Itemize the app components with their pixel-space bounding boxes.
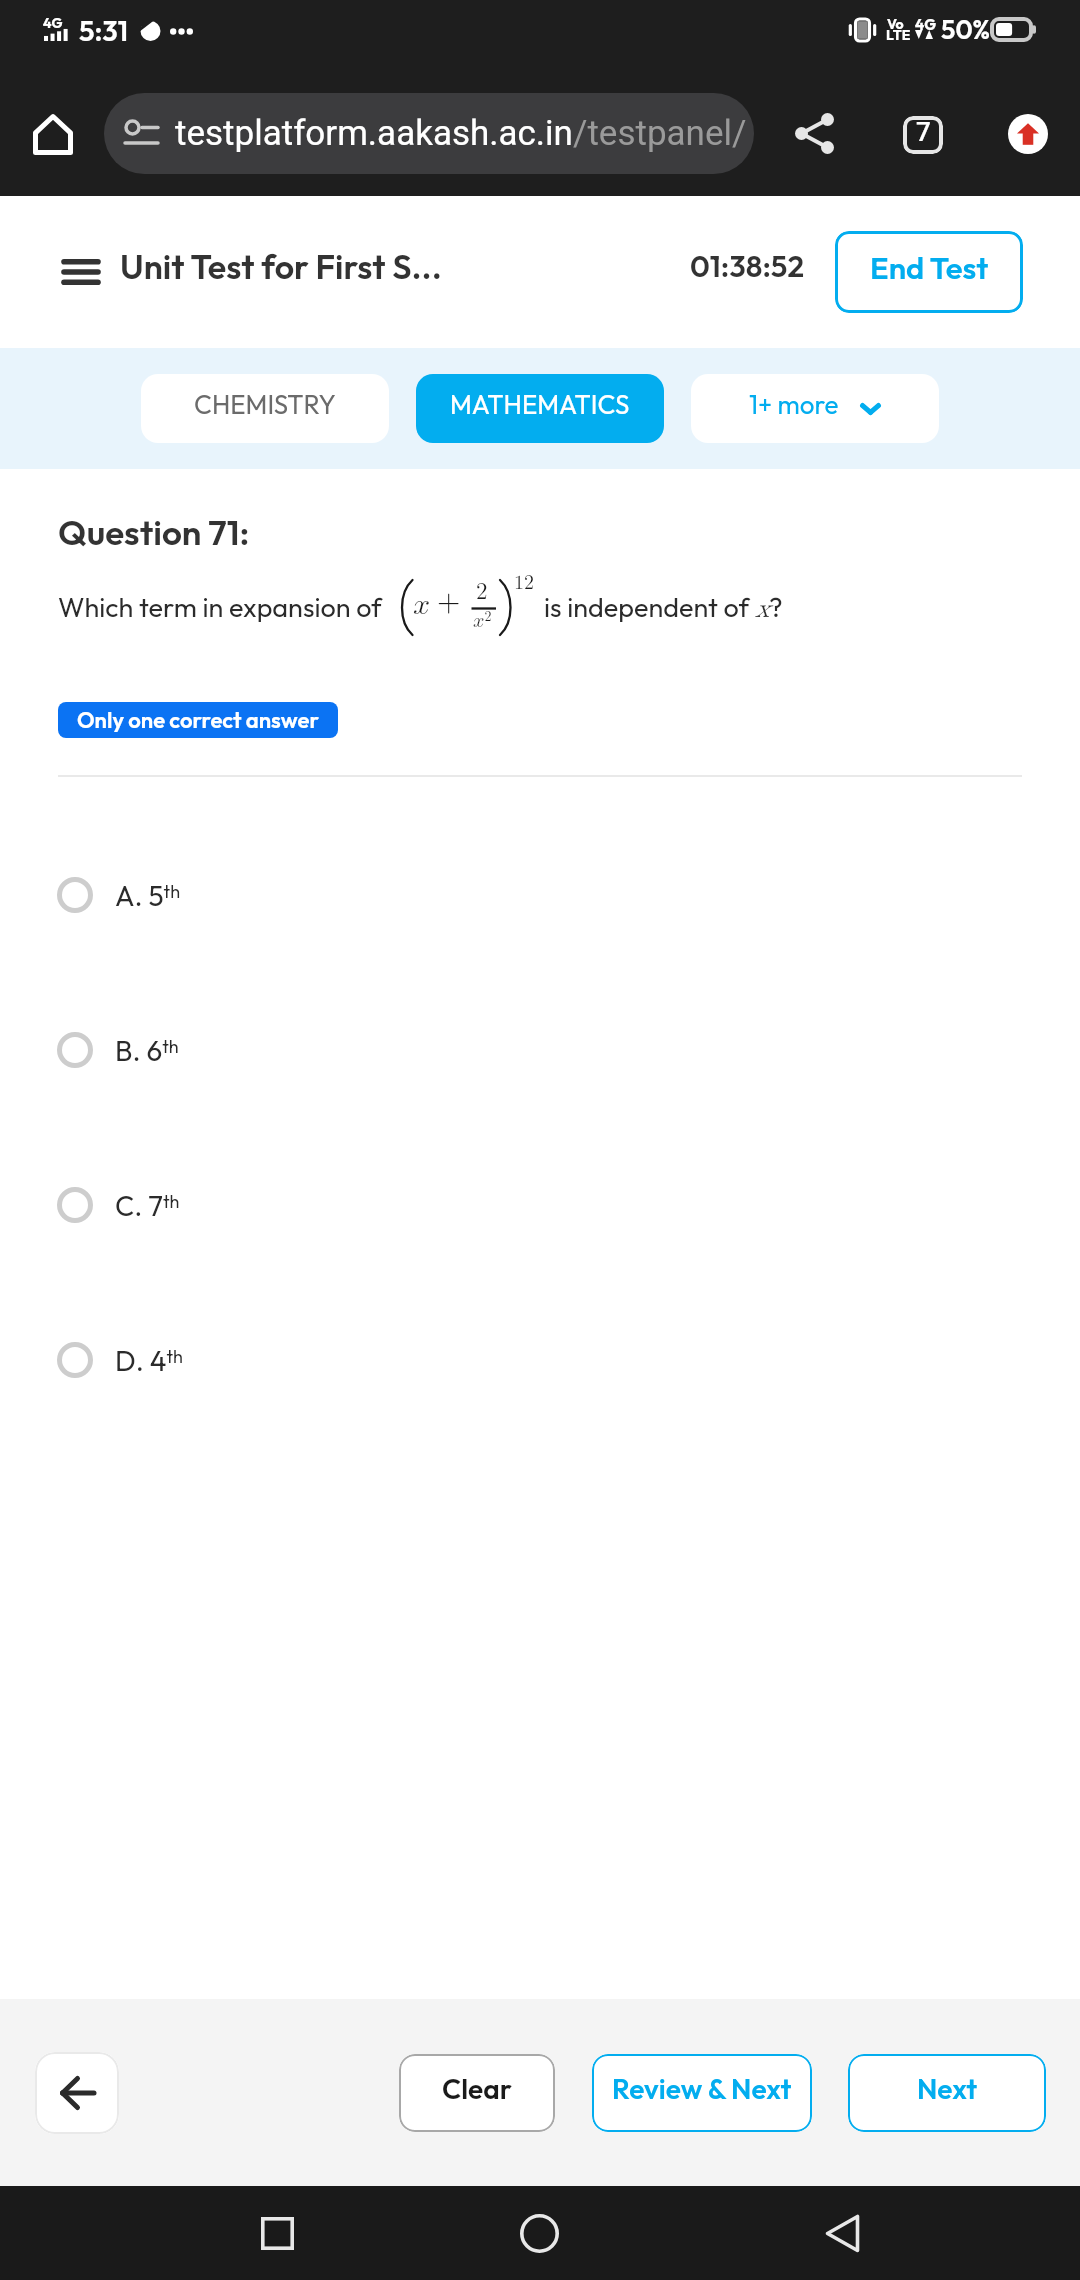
staticText: 1+ more — [749, 388, 839, 421]
staticText: 𝑥2 — [473, 610, 492, 631]
button[interactable]: 1+ more — [691, 374, 939, 443]
staticText: Clear — [442, 2071, 512, 2106]
staticText: is independent of x? — [544, 590, 783, 624]
staticText: Unit Test for First S... — [120, 245, 442, 288]
button[interactable]: Recent apps — [237, 2193, 317, 2273]
staticText: LTE — [886, 26, 911, 44]
staticText: End Test — [870, 248, 989, 287]
button[interactable]: Tabs — [903, 116, 943, 154]
staticText: 50% — [941, 13, 990, 46]
staticText: Next — [917, 2071, 978, 2106]
staticText: D. 4th — [115, 1343, 183, 1378]
button[interactable]: Update available — [1008, 114, 1048, 154]
staticText: C. 7th — [115, 1188, 180, 1223]
button[interactable]: Menu — [64, 259, 98, 285]
staticText: CHEMISTRY — [194, 388, 336, 421]
staticText: Which term in expansion of — [58, 590, 382, 624]
staticText: 4G — [915, 15, 936, 34]
button[interactable]: D. 4th — [0, 1342, 1080, 1378]
staticText: MATHEMATICS — [450, 388, 630, 421]
button[interactable]: Back — [802, 2193, 882, 2273]
button[interactable]: C. 7th — [0, 1187, 1080, 1223]
staticText: B. 6th — [115, 1033, 179, 1068]
staticText: + — [437, 587, 461, 617]
staticText: 01:38:52 — [690, 247, 804, 285]
button[interactable]: End Test — [835, 231, 1023, 313]
staticText: Question 71: — [58, 510, 250, 554]
button[interactable]: Home — [22, 103, 83, 165]
staticText: Vo — [887, 15, 904, 33]
button[interactable]: Home — [499, 2193, 579, 2273]
button[interactable]: Next — [848, 2054, 1046, 2132]
button[interactable]: Share — [784, 103, 844, 163]
staticText: 5:31 — [79, 13, 129, 48]
staticText: testplatform.aakash.ac.in/testpanel/ — [175, 113, 747, 154]
button[interactable]: Review & Next — [592, 2054, 812, 2132]
staticText: Review & Next — [612, 2071, 792, 2106]
staticText: 7 — [916, 117, 931, 147]
button[interactable]: Clear — [399, 2054, 555, 2132]
staticText: A. 5th — [115, 878, 181, 913]
staticText: 2 — [476, 580, 488, 603]
button[interactable]: CHEMISTRY — [141, 374, 389, 443]
button[interactable]: testplatform.aakash.ac.in/testpanel/ — [104, 93, 754, 174]
button[interactable]: MATHEMATICS — [416, 374, 664, 443]
staticText: 12 — [514, 573, 534, 593]
button[interactable]: A. 5th — [0, 877, 1080, 913]
staticText: Only one correct answer — [77, 706, 320, 734]
button[interactable]: Only one correct answer — [58, 702, 338, 738]
button[interactable]: Previous question — [35, 2052, 119, 2134]
button[interactable]: B. 6th — [0, 1032, 1080, 1068]
staticText: 4G — [43, 14, 63, 32]
staticText: 𝑥 — [413, 590, 431, 620]
